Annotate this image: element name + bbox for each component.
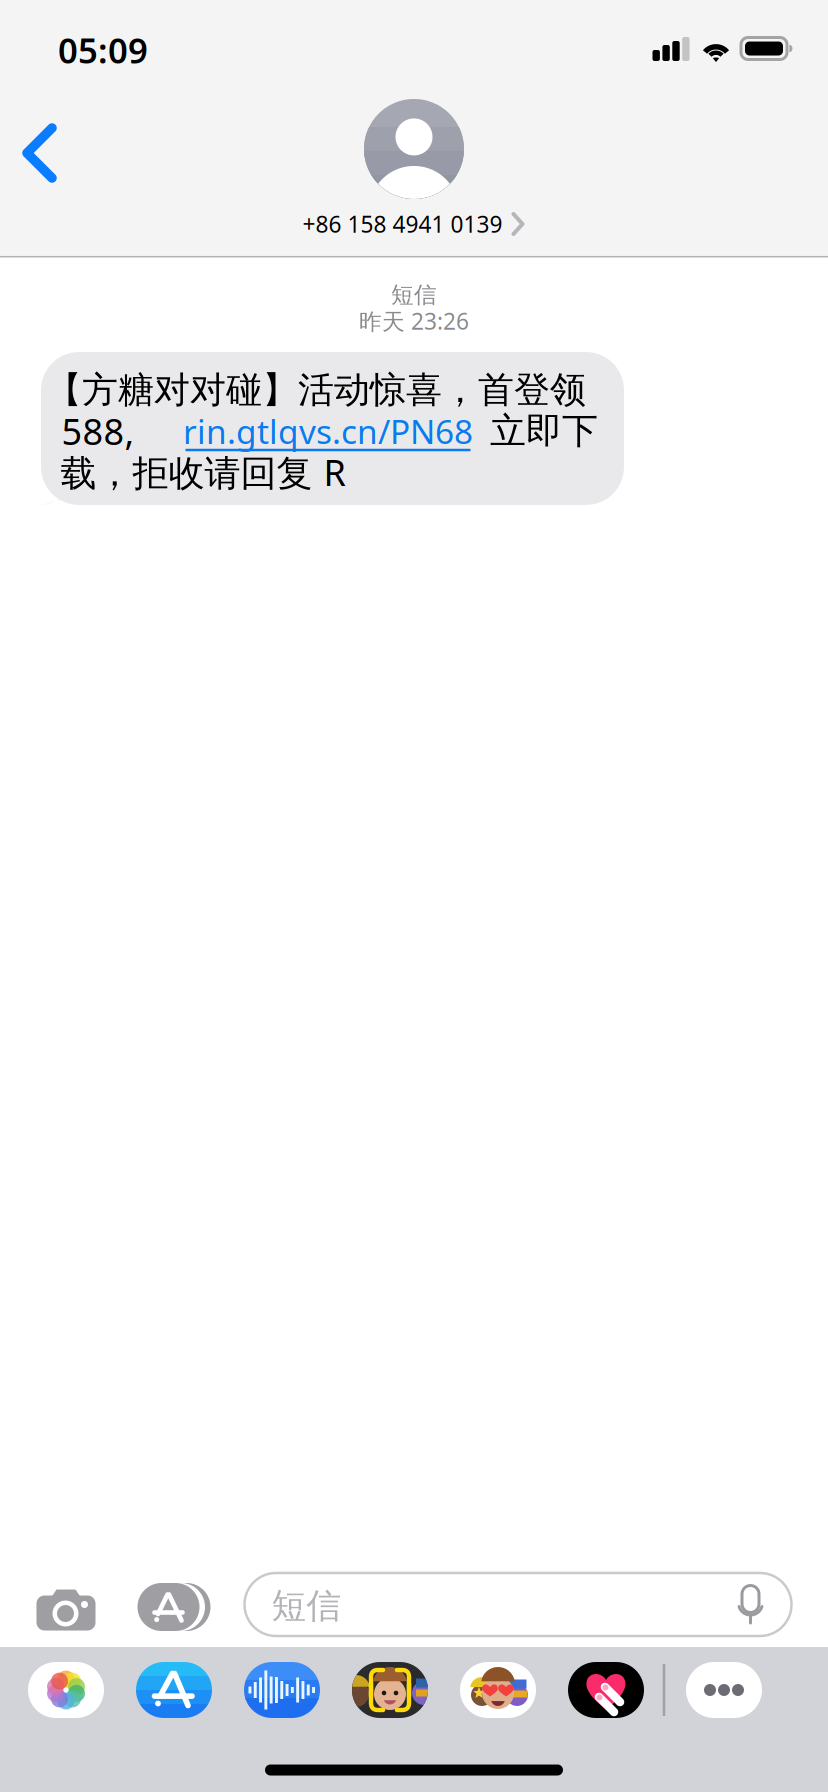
button[interactable]: Contact +86 158 4941 0139 [302,99,525,239]
staticText: 588, [61,406,134,455]
staticText: rin.gtlqvs.cn/PN68 [183,408,473,454]
staticText: 短信 [391,281,437,309]
button[interactable]: Digital Touch [568,1662,644,1718]
button[interactable]: Audio Messages [244,1662,320,1718]
staticText: 05:09 [58,27,148,73]
staticText: 立即下 [490,408,598,454]
button[interactable]: Back [20,122,90,184]
staticText: 短信 [271,1584,341,1628]
staticText: +86 158 4941 0139 [302,209,502,239]
staticText: 载，拒收请回复 R [60,447,345,496]
staticText: 昨天 23:26 [359,306,469,336]
button[interactable]: Message field [244,1573,791,1636]
button[interactable]: Apps [137,1583,210,1631]
button[interactable]: Photos [28,1662,104,1718]
button[interactable]: More apps [686,1662,762,1718]
button[interactable]: Camera [36,1589,95,1630]
button[interactable]: Memoji [352,1662,428,1718]
staticText: 【方糖对对碰】活动惊喜，首登领 [46,367,586,413]
button[interactable]: Memoji Stickers [460,1662,536,1718]
button[interactable]: App Store [136,1662,212,1718]
